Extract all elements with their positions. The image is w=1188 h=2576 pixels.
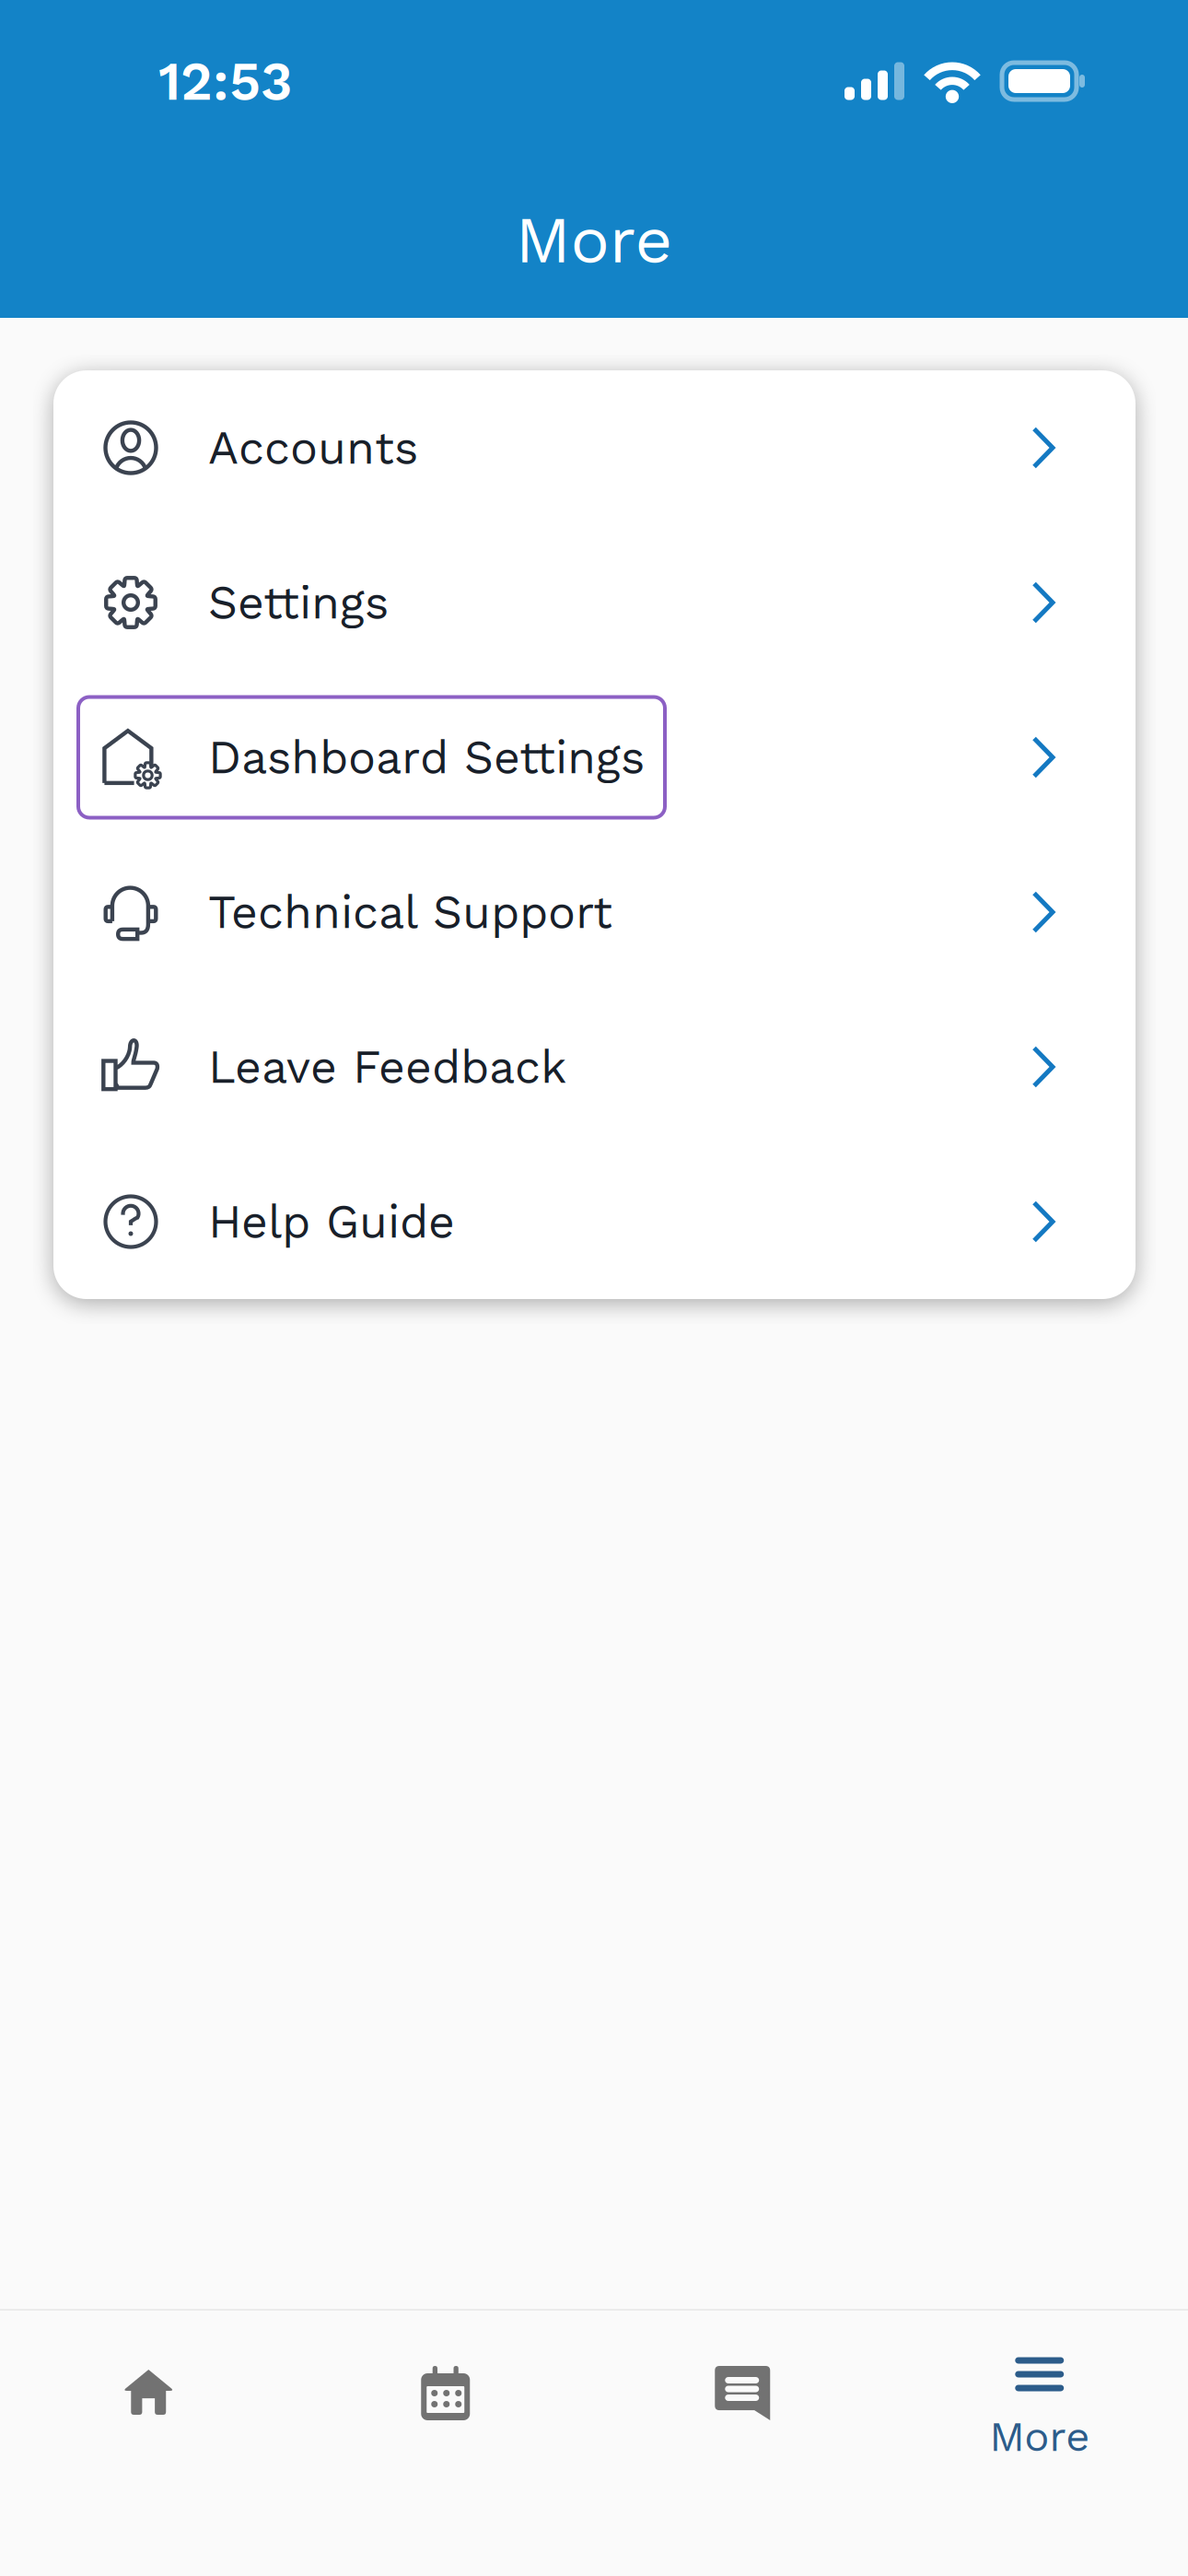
button[interactable]: Technical Support xyxy=(53,835,1136,989)
staticText: Technical Support xyxy=(208,885,612,939)
staticText: Settings xyxy=(208,576,389,630)
staticText: Dashboard Settings xyxy=(208,730,645,784)
button[interactable]: Accounts xyxy=(53,370,1136,525)
button[interactable]: More xyxy=(891,2311,1188,2576)
button[interactable]: Dashboard Settings xyxy=(53,680,1136,835)
button[interactable]: Calendar xyxy=(297,2311,594,2576)
staticText: 12:53 xyxy=(158,49,293,113)
staticText: More xyxy=(515,202,673,278)
staticText: More xyxy=(989,2412,1090,2461)
button[interactable]: Help Guide xyxy=(53,1144,1136,1299)
staticText: Help Guide xyxy=(208,1195,455,1249)
button[interactable]: Leave Feedback xyxy=(53,989,1136,1144)
button[interactable]: Settings xyxy=(53,525,1136,680)
button[interactable]: Messages xyxy=(594,2311,891,2576)
staticText: Leave Feedback xyxy=(208,1040,566,1094)
button[interactable]: Home xyxy=(0,2311,297,2576)
staticText: Accounts xyxy=(208,421,418,475)
